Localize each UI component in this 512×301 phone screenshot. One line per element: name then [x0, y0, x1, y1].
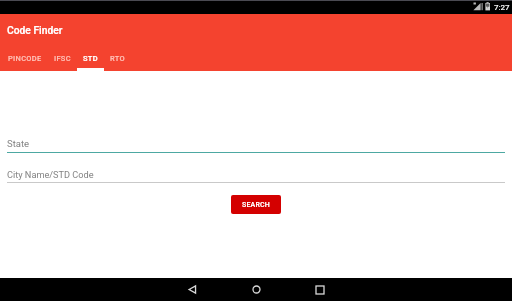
button[interactable]: RTO	[104, 47, 132, 71]
button[interactable]: City Name/STD Code	[7, 165, 505, 183]
staticText: City Name/STD Code	[7, 169, 94, 180]
button[interactable]: PINCODE	[2, 47, 48, 71]
staticText: RTO	[110, 54, 126, 63]
button[interactable]: IFSC	[48, 47, 77, 71]
staticText: State	[7, 138, 30, 149]
staticText: IFSC	[54, 54, 71, 63]
staticText: PINCODE	[8, 54, 42, 63]
staticText: STD	[83, 54, 98, 63]
button[interactable]: Back	[160, 278, 224, 301]
button[interactable]: STD	[77, 47, 104, 71]
button[interactable]: Recents	[288, 278, 352, 301]
button[interactable]: SEARCH	[231, 195, 281, 214]
button[interactable]: State	[7, 134, 505, 153]
button[interactable]: Home	[224, 278, 288, 301]
staticText: Code Finder	[7, 24, 63, 36]
staticText: 7:27	[494, 3, 510, 12]
staticText: SEARCH	[242, 201, 270, 209]
